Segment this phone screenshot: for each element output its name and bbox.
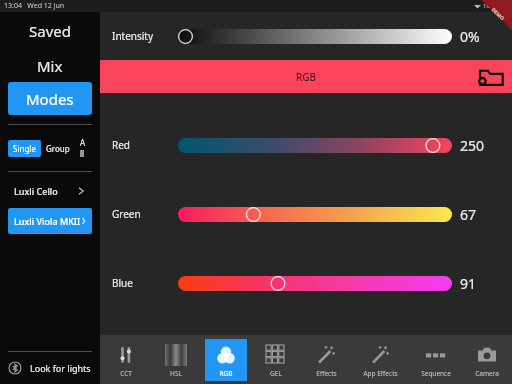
- staticText: Luxli Cello: [14, 185, 58, 197]
- staticText: CCT: [120, 369, 132, 378]
- staticText: Green: [112, 207, 174, 221]
- button[interactable]: Luxli Viola MKII: [8, 208, 92, 234]
- button[interactable]: [178, 205, 452, 223]
- staticText: 0%: [460, 27, 500, 46]
- button[interactable]: Single: [8, 140, 41, 157]
- staticText: Mix: [37, 56, 63, 76]
- button[interactable]: Look for lights: [0, 352, 100, 384]
- button[interactable]: Effects: [301, 335, 351, 384]
- staticText: HSL: [170, 369, 182, 378]
- button[interactable]: Sequence: [409, 335, 462, 384]
- button[interactable]: [178, 27, 452, 45]
- button[interactable]: RGB: [201, 335, 251, 384]
- staticText: Sequence: [421, 369, 451, 378]
- button[interactable]: Mix: [0, 50, 100, 82]
- staticText: Camera: [475, 369, 499, 378]
- staticText: Saved: [29, 21, 71, 41]
- staticText: Effects: [316, 369, 337, 378]
- staticText: Luxli Viola MKII: [14, 215, 81, 227]
- staticText: Blue: [112, 276, 174, 290]
- staticText: 13:04 Wed 12 Jun: [4, 1, 65, 11]
- staticText: 100: [483, 2, 494, 10]
- staticText: Group: [46, 143, 70, 154]
- button[interactable]: [178, 274, 452, 292]
- button[interactable]: GEL: [251, 335, 301, 384]
- button[interactable]: All: [75, 134, 92, 162]
- staticText: 67: [460, 205, 500, 224]
- staticText: DEMO: [490, 6, 506, 23]
- staticText: Red: [112, 138, 174, 152]
- staticText: RGB: [296, 70, 317, 84]
- staticText: 91: [460, 274, 500, 293]
- button[interactable]: Modes: [8, 82, 92, 115]
- button[interactable]: Group: [41, 140, 75, 157]
- button[interactable]: Luxli Cello: [8, 178, 92, 204]
- button[interactable]: RGB: [100, 60, 512, 93]
- staticText: Single: [13, 143, 36, 154]
- staticText: GEL: [270, 369, 282, 378]
- staticText: Modes: [26, 89, 74, 109]
- staticText: App Effects: [363, 369, 398, 378]
- button[interactable]: CCT: [100, 335, 151, 384]
- staticText: 250: [460, 136, 500, 155]
- button[interactable]: HSL: [151, 335, 201, 384]
- button[interactable]: [178, 136, 452, 154]
- button[interactable]: Camera: [462, 335, 512, 384]
- staticText: Look for lights: [30, 362, 91, 374]
- button[interactable]: Add preset folder: [478, 64, 504, 90]
- button[interactable]: Saved: [0, 12, 100, 50]
- staticText: All: [80, 137, 87, 159]
- staticText: Intensity: [112, 29, 174, 43]
- button[interactable]: App Effects: [351, 335, 409, 384]
- staticText: RGB: [219, 369, 233, 378]
